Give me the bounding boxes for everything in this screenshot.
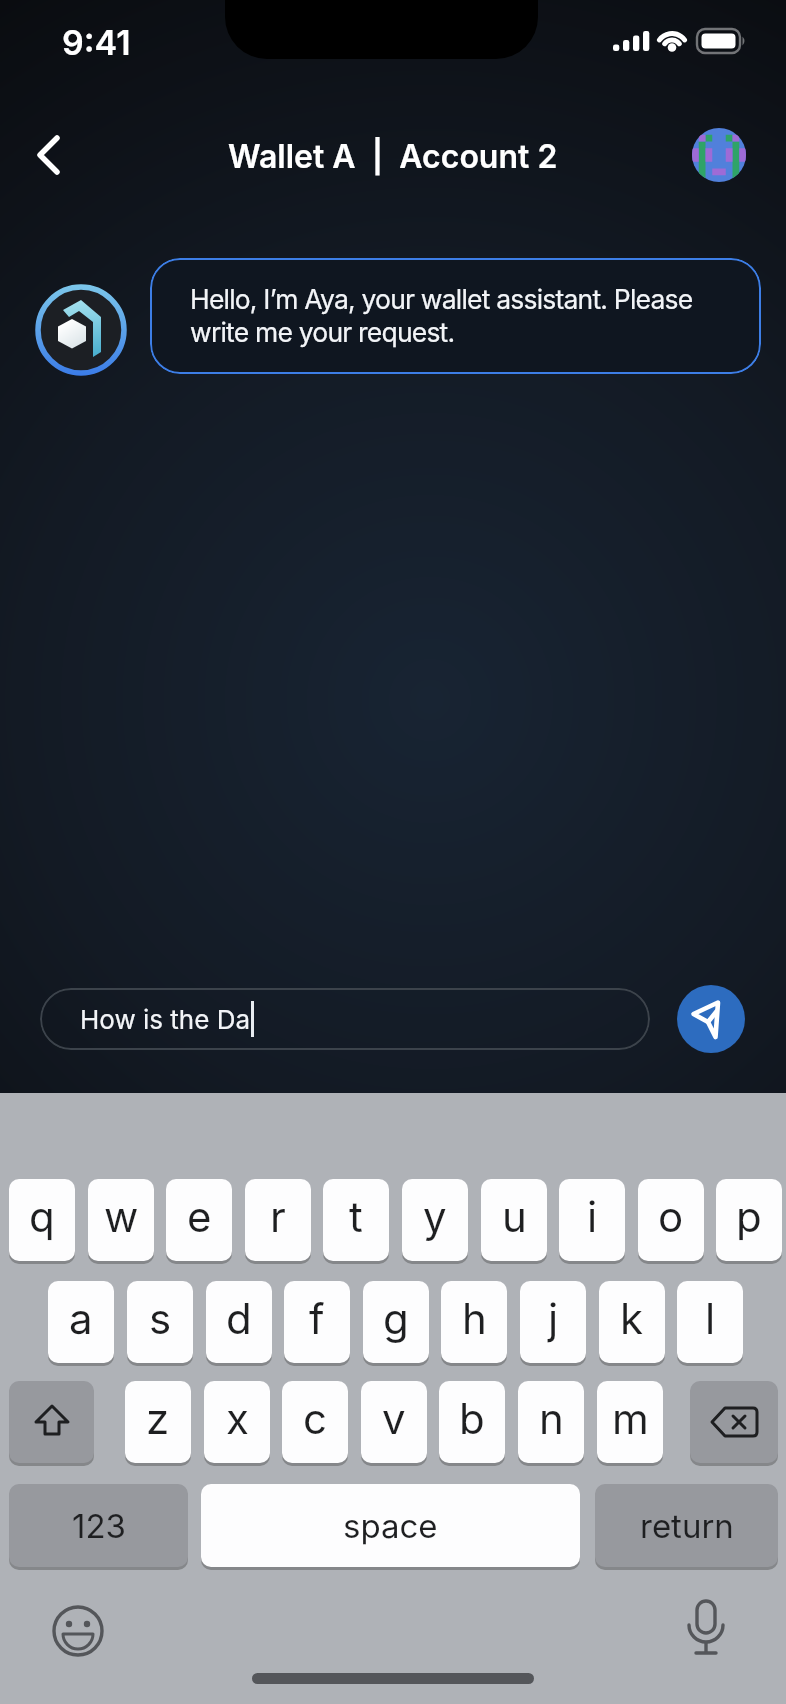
button[interactable]: g	[363, 1281, 429, 1363]
button[interactable]: a	[48, 1281, 114, 1363]
button[interactable]: return	[595, 1484, 778, 1567]
staticText: j	[548, 1293, 559, 1344]
button[interactable]: 123	[9, 1484, 188, 1567]
button[interactable]: q	[9, 1179, 75, 1261]
staticText: s	[149, 1293, 172, 1344]
button[interactable]	[9, 1381, 94, 1463]
staticText: u	[502, 1191, 527, 1242]
staticText: return	[640, 1506, 734, 1546]
staticText: a	[69, 1293, 93, 1344]
button[interactable]: How is the Da	[40, 988, 650, 1050]
button[interactable]: r	[245, 1179, 311, 1261]
staticText: n	[539, 1393, 564, 1444]
button[interactable]: u	[481, 1179, 547, 1261]
button[interactable]: y	[402, 1179, 468, 1261]
staticText: b	[459, 1393, 485, 1444]
button[interactable]: k	[599, 1281, 665, 1363]
button[interactable]: h	[441, 1281, 507, 1363]
button[interactable]	[24, 130, 76, 182]
staticText: q	[29, 1191, 55, 1242]
staticText: v	[382, 1393, 406, 1444]
button[interactable]: Hello, I’m Aya, your wallet assistant. P…	[150, 258, 761, 374]
button[interactable]: p	[716, 1179, 782, 1261]
staticText: g	[383, 1293, 409, 1344]
button[interactable]: d	[206, 1281, 272, 1363]
button[interactable]: m	[597, 1381, 663, 1463]
button[interactable]: t	[323, 1179, 389, 1261]
button[interactable]: o	[638, 1179, 704, 1261]
staticText: m	[612, 1393, 649, 1444]
button[interactable]	[50, 1603, 106, 1659]
button[interactable]	[690, 1381, 778, 1463]
staticText: How is the Da	[80, 1004, 251, 1035]
button[interactable]: l	[677, 1281, 743, 1363]
staticText: 123	[72, 1506, 126, 1546]
button[interactable]: x	[204, 1381, 270, 1463]
button[interactable]: s	[127, 1281, 193, 1363]
staticText: e	[187, 1191, 212, 1242]
button[interactable]	[692, 128, 746, 182]
button[interactable]: e	[166, 1179, 232, 1261]
button[interactable]	[677, 985, 745, 1053]
button[interactable]	[680, 1598, 732, 1664]
staticText: p	[736, 1191, 762, 1242]
staticText: y	[423, 1191, 447, 1242]
button[interactable]: i	[559, 1179, 625, 1261]
button[interactable]: b	[439, 1381, 505, 1463]
staticText: Hello, I’m Aya, your wallet assistant. P…	[190, 283, 693, 349]
staticText: f	[309, 1293, 325, 1344]
button[interactable]: j	[520, 1281, 586, 1363]
staticText: o	[658, 1191, 684, 1242]
button[interactable]: n	[518, 1381, 584, 1463]
staticText: d	[226, 1293, 252, 1344]
button[interactable]: f	[284, 1281, 350, 1363]
staticText: space	[343, 1506, 438, 1546]
staticText: c	[303, 1393, 327, 1444]
staticText: z	[146, 1393, 170, 1444]
button[interactable]: v	[361, 1381, 427, 1463]
button[interactable]: z	[125, 1381, 191, 1463]
staticText: 9:41	[62, 22, 131, 63]
staticText: w	[104, 1191, 139, 1242]
staticText: h	[462, 1293, 487, 1344]
staticText: Wallet A | Account 2	[228, 137, 558, 176]
button[interactable]: w	[88, 1179, 154, 1261]
staticText: r	[270, 1191, 286, 1242]
button[interactable]: c	[282, 1381, 348, 1463]
staticText: l	[705, 1293, 716, 1344]
button[interactable]: space	[201, 1484, 580, 1567]
staticText: k	[620, 1293, 644, 1344]
staticText: t	[349, 1191, 363, 1242]
staticText: x	[226, 1393, 249, 1444]
staticText: i	[587, 1191, 598, 1242]
